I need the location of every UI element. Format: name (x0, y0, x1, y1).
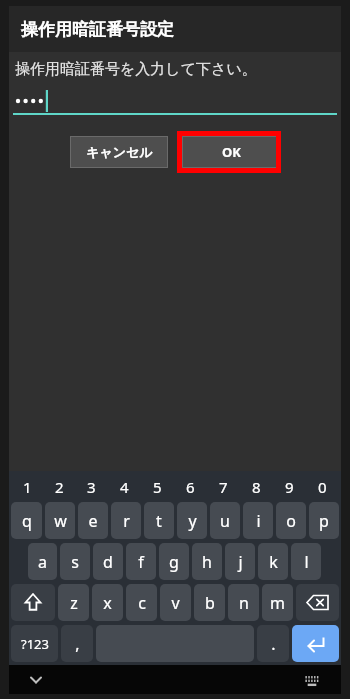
button[interactable]: i (243, 502, 273, 539)
staticText: キャンセル (86, 144, 153, 160)
staticText: g (169, 551, 179, 573)
staticText: f (138, 551, 144, 573)
staticText: p (319, 510, 329, 532)
staticText: d (103, 551, 113, 573)
staticText: 3 (87, 477, 96, 497)
staticText: z (70, 592, 78, 614)
staticText: s (71, 551, 79, 573)
button[interactable]: o (276, 502, 306, 539)
staticText: r (123, 510, 130, 532)
staticText: y (188, 510, 197, 532)
button[interactable]: Shift (11, 584, 55, 621)
button[interactable]: 2 (43, 474, 75, 500)
staticText: . (271, 633, 276, 655)
button[interactable]: h (192, 543, 222, 580)
button[interactable]: e (78, 502, 108, 539)
button[interactable]: Hide keyboard (21, 665, 51, 694)
button[interactable]: 8 (240, 474, 273, 500)
staticText: ?123 (21, 635, 49, 653)
staticText: t (156, 510, 162, 532)
button[interactable]: y (177, 502, 207, 539)
staticText: OK (222, 143, 241, 161)
staticText: n (239, 592, 249, 614)
button[interactable]: ?123 (11, 625, 58, 662)
button[interactable]: , (61, 625, 93, 662)
staticText: 操作用暗証番号設定 (21, 19, 174, 40)
button[interactable]: b (194, 584, 225, 621)
button[interactable]: n (228, 584, 259, 621)
button[interactable]: 9 (273, 474, 306, 500)
staticText: 操作用暗証番号を入力して下さい。 (15, 60, 257, 79)
button[interactable]: 1 (11, 474, 43, 500)
staticText: c (138, 592, 146, 614)
staticText: 8 (252, 477, 261, 497)
staticText: m (270, 592, 285, 614)
staticText: 7 (219, 477, 228, 497)
staticText: l (304, 551, 309, 573)
button[interactable]: r (111, 502, 141, 539)
button[interactable]: j (225, 543, 255, 580)
staticText: , (75, 633, 80, 655)
staticText: 6 (186, 477, 195, 497)
staticText: 0 (318, 477, 327, 497)
button[interactable]: a (28, 543, 57, 580)
button[interactable]: キャンセル (70, 136, 168, 168)
button[interactable]: g (159, 543, 189, 580)
button[interactable]: v (160, 584, 191, 621)
button[interactable]: m (262, 584, 293, 621)
staticText: k (269, 551, 278, 573)
button[interactable]: Backspace (296, 584, 339, 621)
button[interactable]: 3 (75, 474, 108, 500)
button[interactable]: d (93, 543, 123, 580)
button[interactable]: p (309, 502, 339, 539)
button[interactable]: Enter (292, 625, 339, 662)
button[interactable]: s (60, 543, 90, 580)
staticText: v (171, 592, 180, 614)
staticText: 4 (120, 477, 129, 497)
staticText: 1 (23, 477, 32, 497)
staticText: o (286, 510, 296, 532)
button[interactable]: q (11, 502, 42, 539)
button[interactable]: 6 (174, 474, 207, 500)
button[interactable]: Change keyboard (297, 665, 327, 694)
staticText: x (103, 592, 112, 614)
staticText: u (220, 510, 230, 532)
button[interactable]: . (257, 625, 289, 662)
staticText: j (238, 551, 243, 573)
staticText: e (88, 510, 98, 532)
staticText: q (22, 510, 32, 532)
button[interactable]: 0 (306, 474, 339, 500)
button[interactable]: f (126, 543, 156, 580)
button[interactable]: u (210, 502, 240, 539)
button[interactable]: x (92, 584, 123, 621)
button[interactable]: z (58, 584, 89, 621)
staticText: w (54, 510, 67, 532)
staticText: h (202, 551, 212, 573)
staticText: 5 (153, 477, 162, 497)
button[interactable]: t (144, 502, 174, 539)
button[interactable]: 4 (108, 474, 141, 500)
staticText: i (256, 510, 261, 532)
button[interactable]: 5 (141, 474, 174, 500)
button[interactable]: 7 (207, 474, 240, 500)
button[interactable]: l (291, 543, 321, 580)
staticText: 9 (285, 477, 294, 497)
button[interactable] (9, 87, 341, 113)
button[interactable]: k (258, 543, 288, 580)
button[interactable]: c (126, 584, 157, 621)
button[interactable]: w (45, 502, 75, 539)
button[interactable]: OK (182, 136, 280, 168)
staticText: a (38, 551, 47, 573)
staticText: 2 (55, 477, 64, 497)
staticText: b (205, 592, 215, 614)
